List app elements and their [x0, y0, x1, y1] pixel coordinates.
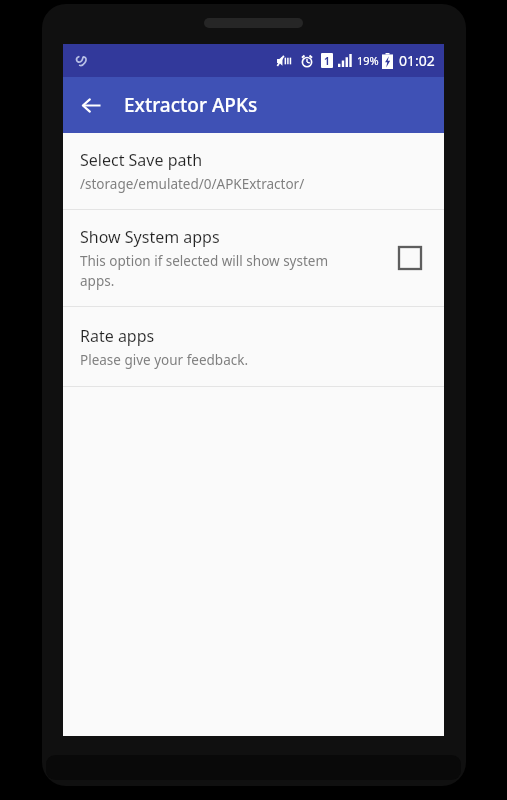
staticText: Select Save path [80, 149, 203, 171]
button[interactable]: Show System apps checkbox [390, 238, 430, 278]
staticText: 1 [324, 54, 330, 68]
staticText: Show System apps [80, 226, 220, 248]
staticText: Extractor APKs [124, 92, 258, 118]
staticText: Please give your feedback. [80, 351, 249, 369]
staticText: /storage/emulated/0/APKExtractor/ [80, 175, 305, 193]
button[interactable]: Select Save path [63, 133, 444, 209]
button[interactable]: Rate apps [63, 307, 444, 386]
staticText: 19% [357, 53, 379, 68]
button[interactable]: Show System apps [63, 210, 444, 306]
button[interactable]: Back [71, 85, 111, 125]
staticText: This option if selected will show system… [80, 252, 329, 290]
staticText: 01:02 [399, 51, 435, 70]
staticText: Rate apps [80, 325, 155, 347]
